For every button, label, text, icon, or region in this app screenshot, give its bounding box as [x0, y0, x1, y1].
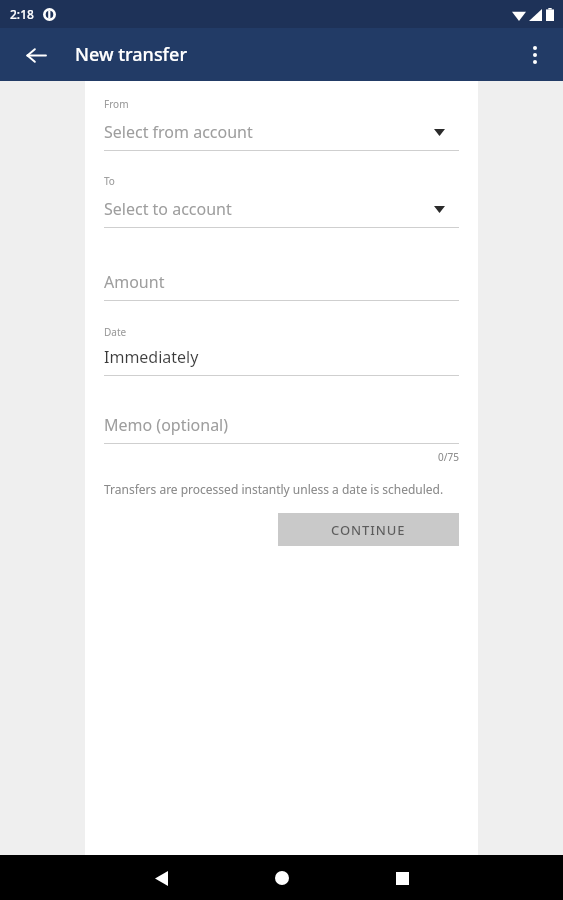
staticText: To [104, 174, 115, 188]
button[interactable]: Amount [104, 271, 459, 301]
staticText: Date [104, 325, 127, 339]
staticText: CONTINUE [331, 521, 406, 539]
staticText: From [104, 97, 129, 111]
staticText: Select from account [104, 121, 434, 143]
button[interactable]: Memo (optional) [104, 414, 459, 444]
button[interactable]: Home [261, 857, 303, 899]
staticText: Select to account [104, 198, 434, 220]
staticText: Transfers are processed instantly unless… [104, 481, 444, 497]
button[interactable]: CONTINUE [278, 513, 459, 546]
staticText: 2:18 [10, 6, 34, 22]
staticText: Immediately [104, 346, 199, 368]
staticText: Amount [104, 271, 165, 293]
button[interactable]: Select from account [104, 97, 459, 151]
button[interactable]: Back [14, 33, 58, 77]
button[interactable]: Date [104, 325, 459, 376]
staticText: Memo (optional) [104, 414, 229, 436]
button[interactable]: Back [140, 857, 182, 899]
button[interactable]: Select to account [104, 174, 459, 228]
button[interactable]: Recent apps [381, 857, 423, 899]
staticText: 0/75 [104, 450, 459, 464]
button[interactable]: More options [513, 33, 557, 77]
staticText: New transfer [75, 42, 187, 67]
